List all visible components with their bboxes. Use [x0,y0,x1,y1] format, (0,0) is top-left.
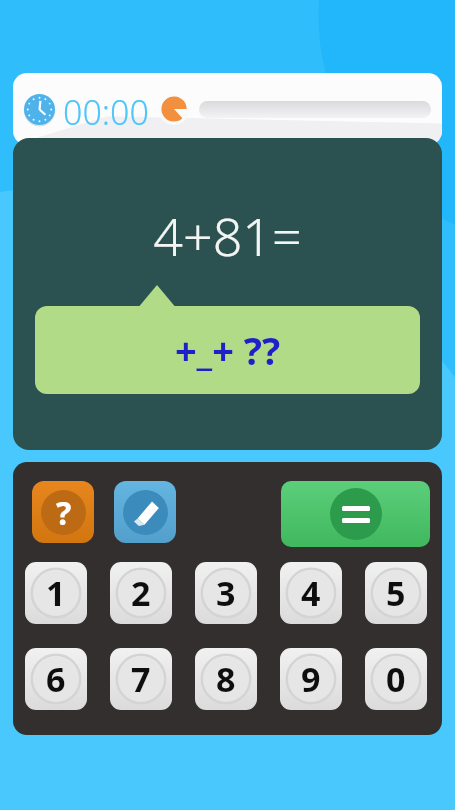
staticText: ? [56,491,72,535]
button[interactable]: Equals [281,481,430,547]
button[interactable]: +_+ ?? [35,306,420,394]
staticText: 2 [131,570,151,616]
button[interactable]: 4 [280,562,342,624]
staticText: 6 [46,656,66,702]
staticText: 0 [386,656,406,702]
staticText: 1 [46,570,66,616]
button[interactable]: 2 [110,562,172,624]
staticText: 9 [301,656,321,702]
button[interactable]: Hint [32,481,94,543]
button[interactable]: Timer [24,94,55,125]
button[interactable]: Erase [114,481,176,543]
staticText: 5 [386,570,406,616]
staticText: +_+ ?? [35,324,420,394]
button[interactable]: 3 [195,562,257,624]
staticText: 8 [216,656,236,702]
other: Progress [159,94,189,124]
button[interactable]: 6 [25,648,87,710]
button[interactable]: 5 [365,562,427,624]
staticText: 4 [301,570,321,616]
button[interactable]: 1 [25,562,87,624]
button[interactable]: 8 [195,648,257,710]
staticText: 00:00 [63,89,149,135]
staticText: 3 [216,570,236,616]
staticText: 4+81= [13,200,442,450]
staticText: 7 [131,656,151,702]
button[interactable]: 9 [280,648,342,710]
button[interactable]: 7 [110,648,172,710]
button[interactable]: 0 [365,648,427,710]
